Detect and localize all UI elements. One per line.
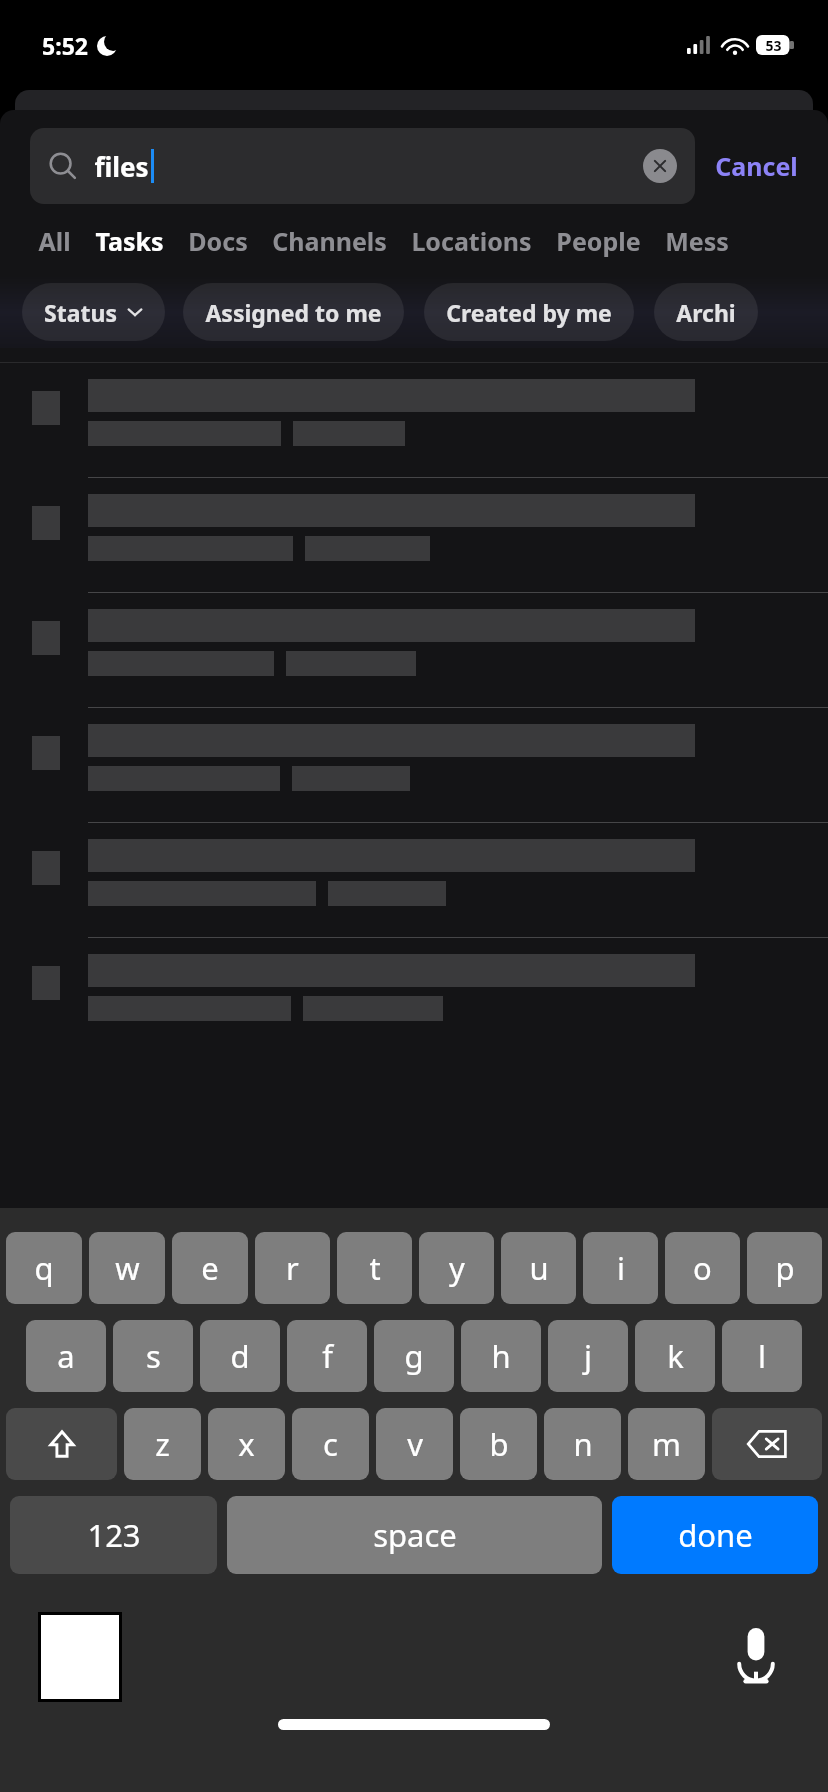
button[interactable]: m — [628, 1408, 705, 1480]
button[interactable]: u — [501, 1232, 576, 1304]
button[interactable]: l — [722, 1320, 802, 1392]
staticText: i — [617, 1247, 625, 1289]
staticText: a — [57, 1335, 75, 1377]
staticText: m — [652, 1423, 681, 1465]
staticText: f — [322, 1335, 333, 1377]
button[interactable]: j — [548, 1320, 628, 1392]
staticText: Created by me — [446, 297, 612, 328]
staticText: Locations — [411, 224, 532, 258]
staticText: h — [491, 1335, 511, 1377]
button[interactable] — [0, 593, 828, 707]
button[interactable]: x — [208, 1408, 285, 1480]
staticText: Cancel — [715, 149, 798, 183]
button[interactable]: Assigned to me — [183, 283, 404, 341]
staticText: files — [94, 149, 149, 184]
staticText: o — [693, 1247, 712, 1289]
staticText: k — [667, 1335, 684, 1377]
button[interactable] — [0, 708, 828, 822]
button[interactable] — [0, 478, 828, 592]
staticText: j — [584, 1335, 592, 1377]
button[interactable]: q — [6, 1232, 82, 1304]
button[interactable] — [0, 823, 828, 937]
button[interactable]: Clear search — [643, 149, 677, 183]
staticText: e — [201, 1247, 219, 1289]
button[interactable]: v — [376, 1408, 453, 1480]
staticText: s — [146, 1335, 161, 1377]
button[interactable]: g — [374, 1320, 454, 1392]
button[interactable]: c — [292, 1408, 369, 1480]
button[interactable]: b — [460, 1408, 537, 1480]
button[interactable]: Dictation — [714, 1614, 798, 1698]
staticText: Channels — [272, 224, 387, 258]
staticText: All — [38, 224, 71, 258]
staticText: Mess — [665, 224, 729, 258]
staticText: 5:52 — [42, 30, 88, 61]
button[interactable]: Backspace — [712, 1408, 822, 1480]
button[interactable]: Created by me — [424, 283, 634, 341]
staticText: w — [115, 1247, 140, 1289]
button[interactable]: Docs — [176, 220, 260, 262]
staticText: l — [758, 1335, 766, 1377]
button[interactable]: All — [26, 220, 83, 262]
staticText: p — [775, 1247, 795, 1289]
staticText: x — [238, 1423, 255, 1465]
button[interactable]: k — [635, 1320, 715, 1392]
button[interactable]: Cancel — [695, 149, 802, 183]
staticText: c — [323, 1423, 338, 1465]
staticText: done — [678, 1514, 753, 1556]
button[interactable]: z — [124, 1408, 201, 1480]
button[interactable]: w — [89, 1232, 165, 1304]
staticText: Docs — [188, 224, 248, 258]
button[interactable]: Archi — [654, 283, 758, 341]
button[interactable]: t — [337, 1232, 412, 1304]
staticText: z — [155, 1423, 170, 1465]
button[interactable]: h — [461, 1320, 541, 1392]
staticText: n — [573, 1423, 593, 1465]
button[interactable]: done — [612, 1496, 818, 1574]
staticText: d — [230, 1335, 250, 1377]
staticText: 123 — [87, 1514, 141, 1556]
button[interactable] — [0, 363, 828, 477]
staticText: r — [286, 1247, 299, 1289]
button[interactable]: y — [419, 1232, 494, 1304]
staticText: b — [489, 1423, 509, 1465]
button[interactable]: p — [747, 1232, 822, 1304]
staticText: Status — [44, 297, 117, 328]
button[interactable]: Status — [22, 283, 165, 341]
button[interactable] — [0, 938, 828, 1052]
staticText: Archi — [676, 297, 736, 328]
staticText: g — [404, 1335, 424, 1377]
staticText: Tasks — [95, 224, 164, 258]
button[interactable]: a — [26, 1320, 106, 1392]
staticText: Assigned to me — [205, 297, 382, 328]
button[interactable]: i — [583, 1232, 658, 1304]
button[interactable]: o — [665, 1232, 740, 1304]
button[interactable]: 123 — [10, 1496, 217, 1574]
staticText: v — [407, 1423, 423, 1465]
button[interactable]: n — [544, 1408, 621, 1480]
button[interactable]: e — [172, 1232, 248, 1304]
button[interactable]: Mess — [653, 220, 741, 262]
staticText: q — [34, 1247, 54, 1289]
button[interactable]: Locations — [399, 220, 544, 262]
button[interactable]: Channels — [260, 220, 399, 262]
staticText: 53 — [765, 36, 782, 55]
staticText: u — [529, 1247, 549, 1289]
button[interactable]: f — [287, 1320, 367, 1392]
button[interactable]: People — [544, 220, 653, 262]
button[interactable]: s — [113, 1320, 193, 1392]
button[interactable]: d — [200, 1320, 280, 1392]
staticText: People — [556, 224, 641, 258]
staticText: space — [373, 1514, 457, 1556]
button[interactable]: files — [30, 128, 695, 204]
button[interactable]: Shift — [6, 1408, 117, 1480]
staticText: t — [369, 1247, 381, 1289]
button[interactable]: r — [255, 1232, 330, 1304]
button[interactable]: Tasks — [83, 220, 176, 262]
button[interactable]: Emoji keyboard — [38, 1612, 122, 1702]
button[interactable]: space — [227, 1496, 602, 1574]
staticText: y — [449, 1247, 465, 1289]
